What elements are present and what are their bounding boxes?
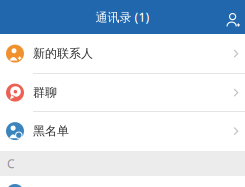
staticText: 新的联系人	[33, 46, 93, 61]
button[interactable]: 群聊	[0, 74, 245, 112]
staticText: 通讯录 (1)	[95, 9, 149, 25]
staticText: 黑名单	[33, 124, 69, 138]
staticText: C	[7, 155, 15, 171]
button[interactable]: 新的联系人	[0, 34, 245, 74]
button[interactable]	[0, 176, 245, 187]
staticText: 群聊	[33, 85, 57, 100]
button[interactable]: 黑名单	[0, 112, 245, 151]
button[interactable]: Add contact	[215, 0, 245, 34]
